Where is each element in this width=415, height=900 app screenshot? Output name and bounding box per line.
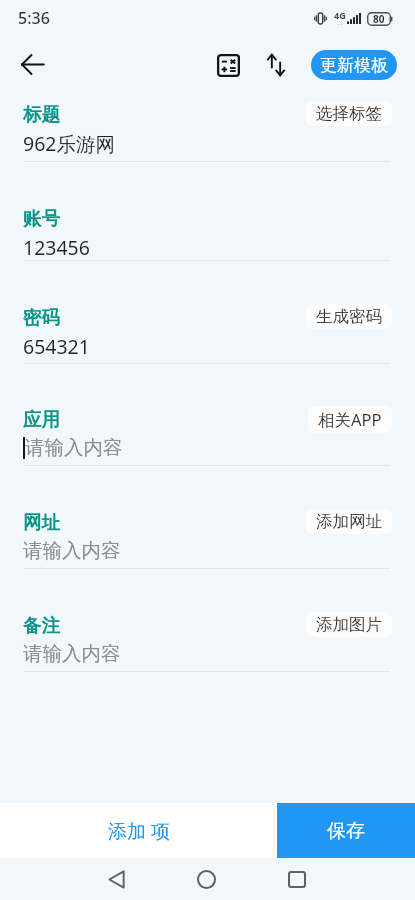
- staticText: 请输入内容: [25, 435, 123, 460]
- button[interactable]: Back: [10, 42, 54, 86]
- button[interactable]: 添加 项: [0, 803, 277, 858]
- button[interactable]: 备注: [0, 569, 415, 672]
- button[interactable]: Recents: [274, 858, 319, 900]
- button[interactable]: 添加网址: [306, 509, 392, 534]
- button[interactable]: 更新模板: [311, 50, 397, 80]
- button[interactable]: Home: [184, 858, 229, 900]
- button[interactable]: 相关APP: [308, 406, 392, 433]
- button[interactable]: 选择标签: [306, 101, 392, 126]
- staticText: 123456: [23, 234, 90, 261]
- staticText: 请输入内容: [23, 538, 121, 563]
- button[interactable]: 添加图片: [306, 612, 392, 637]
- staticText: 相关APP: [318, 408, 382, 431]
- staticText: 备注: [23, 614, 60, 637]
- staticText: 添加 项: [108, 818, 170, 844]
- button[interactable]: 保存: [277, 803, 415, 858]
- staticText: 4G: [334, 9, 346, 21]
- staticText: 962乐游网: [23, 130, 115, 157]
- staticText: 生成密码: [316, 306, 382, 327]
- staticText: 添加图片: [316, 614, 382, 635]
- staticText: 更新模板: [320, 55, 388, 76]
- staticText: 80: [373, 12, 385, 26]
- staticText: 密码: [23, 306, 60, 329]
- button[interactable]: Sort: [258, 45, 298, 85]
- button[interactable]: 应用: [0, 364, 415, 466]
- button[interactable]: 密码: [0, 261, 415, 364]
- button[interactable]: 账号: [0, 162, 415, 261]
- staticText: 标题: [23, 103, 60, 126]
- button[interactable]: 网址: [0, 466, 415, 569]
- staticText: 选择标签: [316, 103, 382, 124]
- button[interactable]: Back: [94, 858, 139, 900]
- button[interactable]: Calculator: [211, 45, 251, 85]
- staticText: 5:36: [18, 7, 50, 29]
- staticText: 网址: [23, 511, 60, 534]
- staticText: 添加网址: [316, 511, 382, 532]
- staticText: 654321: [23, 333, 90, 360]
- button[interactable]: 标题: [0, 88, 415, 162]
- staticText: 账号: [23, 207, 60, 230]
- staticText: 应用: [23, 408, 60, 431]
- staticText: 保存: [327, 819, 365, 843]
- staticText: ⌄⌄: [337, 21, 344, 26]
- staticText: 请输入内容: [23, 641, 121, 666]
- button[interactable]: 生成密码: [306, 304, 392, 329]
